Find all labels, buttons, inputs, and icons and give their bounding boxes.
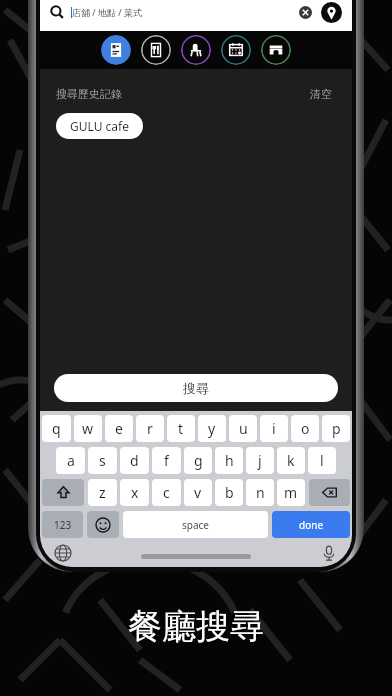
staticText: y xyxy=(208,419,216,438)
staticText: t xyxy=(178,419,184,438)
other: Search xyxy=(50,5,64,19)
staticText: GULU cafe xyxy=(70,118,129,134)
staticText: r xyxy=(147,419,153,438)
button[interactable]: h xyxy=(215,447,243,474)
button[interactable]: 清空 xyxy=(306,83,336,105)
staticText: k xyxy=(287,451,295,470)
staticText: w xyxy=(82,419,94,438)
button[interactable]: 搜尋 xyxy=(54,374,338,402)
button[interactable]: k xyxy=(277,447,305,474)
button[interactable]: Backspace xyxy=(309,479,350,506)
button[interactable]: q xyxy=(42,415,71,442)
staticText: 店舖 / 地點 / 菜式 xyxy=(72,6,143,18)
staticText: j xyxy=(258,451,262,470)
staticText: s xyxy=(99,451,106,470)
button[interactable]: d xyxy=(120,447,149,474)
staticText: m xyxy=(284,483,298,502)
staticText: 餐廳搜尋 xyxy=(128,605,264,648)
staticText: i xyxy=(272,419,276,438)
staticText: space xyxy=(182,518,209,532)
staticText: b xyxy=(225,483,234,502)
button[interactable]: x xyxy=(120,479,149,506)
staticText: u xyxy=(239,419,248,438)
button[interactable]: Menu xyxy=(141,35,171,65)
button[interactable]: done xyxy=(272,511,350,538)
staticText: done xyxy=(299,518,324,532)
staticText: z xyxy=(99,483,106,502)
button[interactable]: i xyxy=(260,415,288,442)
button[interactable]: o xyxy=(291,415,319,442)
staticText: x xyxy=(131,483,139,502)
button[interactable]: b xyxy=(215,479,243,506)
button[interactable]: Voice input xyxy=(320,544,338,562)
button[interactable]: j xyxy=(246,447,274,474)
staticText: 搜尋歷史記錄 xyxy=(56,87,122,101)
staticText: h xyxy=(225,451,234,470)
button[interactable]: e xyxy=(105,415,133,442)
button[interactable]: 123 xyxy=(42,511,83,538)
button[interactable]: space xyxy=(123,511,268,538)
button[interactable]: a xyxy=(56,447,85,474)
staticText: 123 xyxy=(54,518,72,532)
button[interactable]: t xyxy=(167,415,195,442)
button[interactable]: l xyxy=(308,447,336,474)
button[interactable]: c xyxy=(152,479,181,506)
staticText: n xyxy=(256,483,265,502)
button[interactable]: p xyxy=(322,415,350,442)
staticText: l xyxy=(320,451,324,470)
button[interactable]: m xyxy=(277,479,305,506)
staticText: a xyxy=(67,451,75,470)
button[interactable]: GULU cafe xyxy=(56,113,143,139)
staticText: o xyxy=(301,419,310,438)
button[interactable]: Shop xyxy=(261,35,291,65)
staticText: v xyxy=(194,483,202,502)
staticText: c xyxy=(163,483,170,502)
button[interactable]: z xyxy=(88,479,117,506)
staticText: f xyxy=(164,451,169,470)
button[interactable]: Seats xyxy=(181,35,211,65)
staticText: d xyxy=(130,451,139,470)
button[interactable]: Deals xyxy=(101,35,131,65)
button[interactable]: r xyxy=(136,415,164,442)
button[interactable]: s xyxy=(88,447,117,474)
staticText: 清空 xyxy=(310,87,332,101)
button[interactable]: w xyxy=(74,415,102,442)
button[interactable]: Booking xyxy=(221,35,251,65)
button[interactable]: Shift xyxy=(42,479,84,506)
button[interactable]: v xyxy=(184,479,212,506)
button[interactable]: u xyxy=(229,415,257,442)
button[interactable]: g xyxy=(184,447,212,474)
staticText: 搜尋 xyxy=(183,380,209,396)
staticText: q xyxy=(52,419,61,438)
button[interactable]: Clear xyxy=(299,6,312,19)
staticText: e xyxy=(115,419,123,438)
button[interactable]: y xyxy=(198,415,226,442)
button[interactable]: Location xyxy=(321,2,342,23)
button[interactable]: Emoji xyxy=(87,511,119,538)
button[interactable]: n xyxy=(246,479,274,506)
button[interactable]: f xyxy=(152,447,181,474)
staticText: g xyxy=(194,451,203,470)
button[interactable]: Change keyboard xyxy=(54,544,72,562)
staticText: p xyxy=(332,419,341,438)
